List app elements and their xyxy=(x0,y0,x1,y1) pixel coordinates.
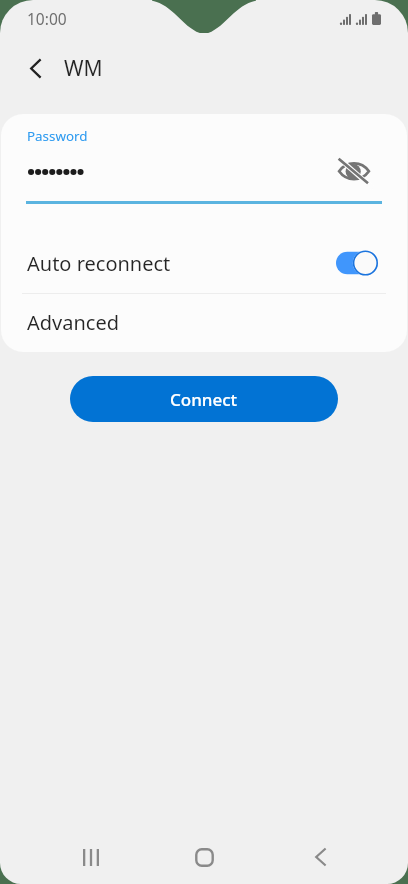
staticText: Auto reconnect xyxy=(27,250,171,277)
button[interactable]: Auto reconnect xyxy=(336,250,378,276)
staticText: Password xyxy=(27,127,88,145)
staticText: WM xyxy=(64,54,103,83)
staticText: Connect xyxy=(170,388,238,411)
button[interactable]: Home xyxy=(181,834,227,880)
button[interactable]: Back xyxy=(17,50,54,87)
button[interactable]: Recents xyxy=(68,834,114,880)
button[interactable]: Back xyxy=(297,834,343,880)
staticText: 10:00 xyxy=(27,8,67,29)
staticText: Advanced xyxy=(27,309,119,336)
button[interactable]: Show password xyxy=(336,153,372,189)
button[interactable]: Connect xyxy=(70,376,338,422)
